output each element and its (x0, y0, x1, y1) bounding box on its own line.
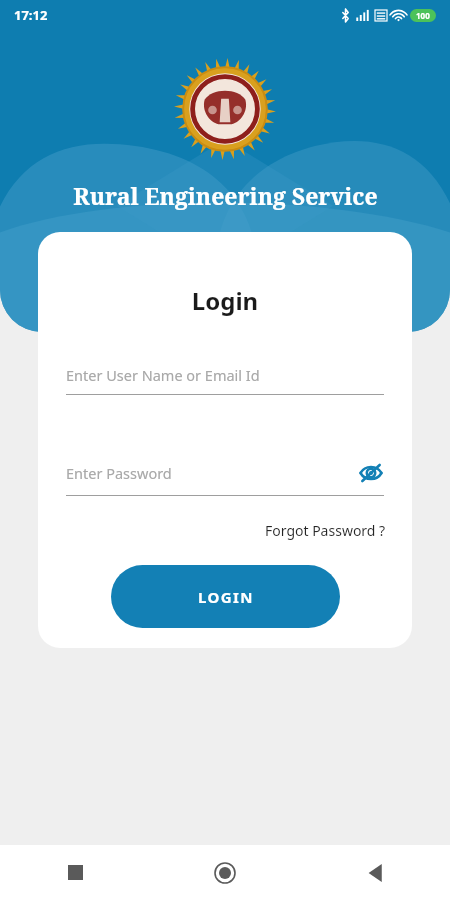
button[interactable]: Show password (358, 460, 384, 486)
button[interactable]: Forgot Password ? (261, 519, 390, 542)
staticText: LOGIN (198, 587, 254, 607)
staticText: 17:12 (14, 6, 48, 24)
staticText: Enter User Name or Email Id (66, 365, 260, 385)
button[interactable]: Back (300, 845, 450, 900)
button[interactable]: Recents (0, 845, 150, 900)
button[interactable]: LOGIN (111, 565, 340, 628)
button[interactable]: Home (150, 845, 300, 900)
button[interactable]: Enter User Name or Email Id (66, 365, 384, 395)
staticText: Rural Engineering Service (73, 180, 378, 211)
staticText: 100 (416, 10, 430, 21)
staticText: Login (38, 284, 412, 317)
button[interactable]: Enter Password (66, 460, 384, 496)
staticText: Enter Password (66, 463, 172, 483)
